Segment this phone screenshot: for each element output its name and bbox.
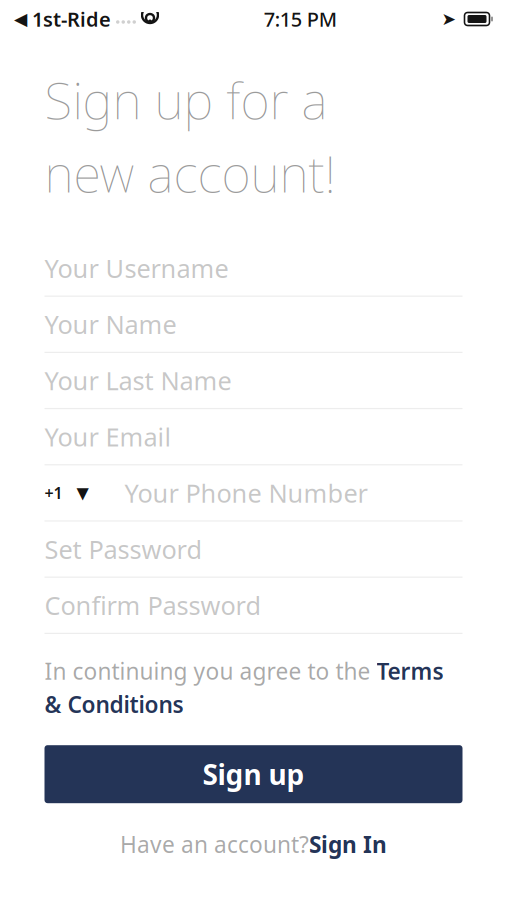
staticText: Your Last Name [44,364,231,397]
staticText: ➤ [441,9,456,29]
staticText: +1 [44,482,62,503]
staticText: & Conditions [44,689,183,719]
button[interactable]: Your Username [44,241,462,297]
button[interactable]: Sign In [309,829,387,859]
staticText: Have an account? [120,829,309,859]
staticText: Your Name [44,307,176,341]
staticText: Set Password [44,532,202,566]
button[interactable]: Terms [376,656,443,686]
staticText: 1st-Ride [32,6,111,32]
staticText: In continuing you agree to the [44,656,376,686]
staticText: Sign up for a [44,66,327,133]
staticText: Sign up [202,756,304,793]
button[interactable]: & Conditions [44,689,183,719]
staticText: Sign In [309,829,387,859]
staticText: Your Phone Number [124,476,367,510]
button[interactable]: Your Email [44,409,462,465]
staticText: 7:15 PM [264,6,337,32]
staticText: new account! [44,139,335,207]
staticText: Your Username [44,251,228,285]
button[interactable]: Sign up [44,745,462,803]
staticText: Terms [376,656,443,686]
button[interactable]: Your Name [44,297,462,353]
button[interactable]: +1 [44,465,462,522]
staticText: Confirm Password [44,588,261,622]
button[interactable]: Confirm Password [44,578,462,634]
staticText: ▼ [76,484,88,502]
button[interactable]: Your Last Name [44,353,462,409]
staticText: ◀ [14,9,27,29]
staticText: Your Email [44,420,171,453]
button[interactable]: Set Password [44,522,462,578]
